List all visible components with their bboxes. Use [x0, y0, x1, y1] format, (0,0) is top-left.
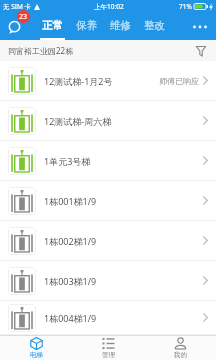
- button[interactable]: 维修: [103, 13, 137, 40]
- button[interactable]: 管理: [72, 336, 144, 360]
- staticText: 保养: [76, 19, 97, 32]
- staticText: 正常: [42, 19, 63, 32]
- button[interactable]: [194, 44, 208, 58]
- button[interactable]: 整改: [137, 13, 171, 40]
- staticText: 整改: [144, 19, 165, 32]
- button[interactable]: 电梯: [0, 336, 72, 360]
- button[interactable]: 12测试梯-周六梯: [0, 101, 216, 141]
- button[interactable]: 正常: [35, 13, 69, 40]
- staticText: 同富裕工业园22栋: [8, 45, 74, 56]
- staticText: 电梯: [30, 351, 43, 359]
- staticText: 23: [19, 12, 28, 22]
- button[interactable]: 保养: [69, 13, 103, 40]
- staticText: 管理: [102, 351, 115, 359]
- button[interactable]: 23: [0, 13, 36, 40]
- button[interactable]: 12测试梯-1月2号: [0, 61, 216, 101]
- button[interactable]: 1栋003梯1/9: [0, 261, 216, 301]
- staticText: 71%: [179, 2, 192, 11]
- staticText: 我的: [174, 351, 187, 359]
- staticText: 1单元3号梯: [44, 155, 91, 167]
- staticText: 上午10:02: [94, 2, 124, 11]
- button[interactable]: 1单元3号梯: [0, 141, 216, 181]
- button[interactable]: 1栋004梯1/9: [0, 301, 216, 335]
- button[interactable]: 我的: [144, 336, 216, 360]
- button[interactable]: 1栋001梯1/9: [0, 181, 216, 221]
- staticText: 12测试梯-周六梯: [44, 115, 112, 127]
- button[interactable]: 1栋002梯1/9: [0, 221, 216, 261]
- staticText: 师傅已响应: [159, 76, 199, 86]
- staticText: 1栋004梯1/9: [44, 312, 97, 324]
- button[interactable]: [192, 19, 208, 35]
- staticText: 12测试梯-1月2号: [44, 75, 113, 87]
- staticText: 维修: [110, 19, 131, 32]
- staticText: 1栋001梯1/9: [44, 195, 97, 207]
- staticText: 无 SIM 卡: [3, 2, 32, 11]
- staticText: 1栋003梯1/9: [44, 275, 97, 287]
- staticText: 1栋002梯1/9: [44, 235, 97, 247]
